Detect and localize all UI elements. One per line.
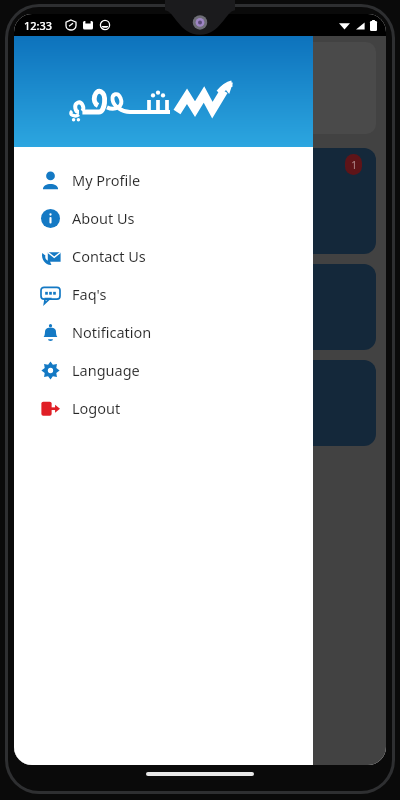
staticText: My Profile [72, 170, 141, 190]
staticText: About Us [72, 208, 135, 228]
button[interactable]: Faq's [14, 275, 313, 313]
staticText: Notification [72, 322, 152, 342]
button[interactable]: Logout [14, 389, 313, 427]
button[interactable]: Contact Us [14, 237, 313, 275]
button[interactable]: 1 [24, 148, 376, 254]
button[interactable] [24, 360, 376, 446]
staticText: Faq's [72, 284, 107, 304]
staticText: Logout [72, 398, 121, 418]
staticText: 12:33 [24, 18, 53, 33]
button[interactable] [24, 264, 376, 350]
staticText: Language [122, 92, 188, 111]
button[interactable]: Notification [14, 313, 313, 351]
staticText: Contact Us [72, 246, 146, 266]
button[interactable]: Language [40, 76, 270, 126]
button[interactable]: About Us [14, 199, 313, 237]
button[interactable]: My Profile [14, 161, 313, 199]
staticText: 1 [351, 158, 357, 172]
button[interactable]: Language [14, 351, 313, 389]
staticText: Language [72, 360, 140, 380]
